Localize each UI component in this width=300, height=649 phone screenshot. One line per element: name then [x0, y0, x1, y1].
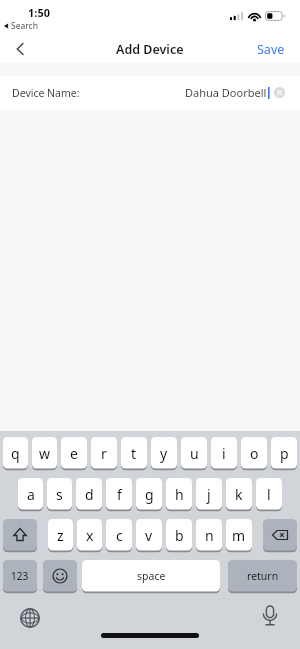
button[interactable]: 123	[3, 560, 37, 592]
staticText: w	[39, 444, 51, 463]
button[interactable]: f	[106, 478, 132, 510]
button[interactable]: u	[181, 437, 207, 469]
staticText: Device Name:	[12, 86, 80, 100]
staticText: c	[116, 526, 123, 545]
staticText: b	[175, 526, 184, 545]
staticText: g	[145, 485, 154, 504]
button[interactable]: e	[61, 437, 87, 469]
staticText: 123	[11, 569, 29, 583]
staticText: v	[145, 526, 153, 545]
staticText: Search	[11, 20, 38, 32]
staticText: o	[250, 444, 259, 463]
staticText: m	[232, 526, 246, 545]
staticText: z	[57, 526, 64, 545]
button[interactable]: t	[121, 437, 147, 469]
button[interactable]: a	[18, 478, 43, 510]
staticText: l	[267, 485, 271, 504]
staticText: 1:50	[28, 5, 50, 20]
staticText: return	[247, 569, 279, 583]
button[interactable]: p	[271, 437, 297, 469]
button[interactable]: n	[196, 519, 222, 551]
button[interactable]: y	[151, 437, 177, 469]
staticText: n	[205, 526, 214, 545]
staticText: r	[101, 444, 107, 463]
staticText: d	[85, 485, 94, 504]
button[interactable]: Device Name:	[0, 76, 300, 109]
button[interactable]: i	[211, 437, 237, 469]
staticText: h	[175, 485, 184, 504]
staticText: k	[235, 485, 243, 504]
staticText: p	[280, 444, 289, 463]
staticText: j	[207, 485, 211, 504]
staticText: i	[222, 444, 226, 463]
button[interactable]: c	[106, 519, 132, 551]
button[interactable]: w	[32, 437, 57, 469]
staticText: Dahua Doorbell	[185, 85, 267, 100]
button[interactable]: Save	[257, 41, 285, 58]
button[interactable]: x	[77, 519, 102, 551]
button[interactable]: l	[256, 478, 282, 510]
button[interactable]	[261, 606, 279, 628]
staticText: s	[56, 485, 63, 504]
staticText: a	[27, 485, 35, 504]
button[interactable]: space	[82, 560, 220, 592]
button[interactable]: v	[136, 519, 162, 551]
button[interactable]	[19, 607, 41, 629]
button[interactable]	[3, 519, 37, 551]
button[interactable]: m	[226, 519, 252, 551]
staticText: x	[86, 526, 94, 545]
staticText: Add Device	[116, 41, 184, 58]
button[interactable]: q	[3, 437, 28, 469]
button[interactable]	[10, 39, 30, 59]
staticText: u	[190, 444, 199, 463]
button[interactable]: b	[166, 519, 192, 551]
staticText: e	[70, 444, 78, 463]
button[interactable]: o	[241, 437, 267, 469]
button[interactable]: s	[47, 478, 72, 510]
staticText: f	[117, 485, 122, 504]
staticText: Save	[257, 41, 285, 58]
button[interactable]: h	[166, 478, 192, 510]
staticText: t	[131, 444, 137, 463]
button[interactable]: r	[91, 437, 117, 469]
staticText: q	[11, 444, 20, 463]
button[interactable]: g	[136, 478, 162, 510]
staticText: space	[137, 569, 166, 583]
staticText: y	[160, 444, 168, 463]
button[interactable]: j	[196, 478, 222, 510]
button[interactable]	[274, 87, 285, 98]
button[interactable]: z	[48, 519, 73, 551]
button[interactable]: d	[76, 478, 102, 510]
button[interactable]	[263, 519, 297, 551]
button[interactable]: return	[228, 560, 297, 592]
button[interactable]: k	[226, 478, 252, 510]
button[interactable]	[43, 560, 77, 592]
